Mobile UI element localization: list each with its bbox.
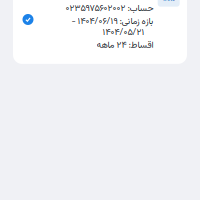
staticText: بازه زمانی: ۱۴۰۴/۰۶/۱۹ -: [71, 15, 153, 29]
staticText: ۱۴۰۴/۰۵/۲۱: [102, 26, 144, 40]
staticText: اقساط: ۲۴ ماهه: [96, 38, 153, 53]
staticText: تایید شده: [163, 0, 175, 5]
staticText: حساب: ۰۲۳۵۹۷۵۶۰۲۰۰۲: [65, 2, 153, 16]
button[interactable]: جزئیات تسهیلات: [0, 0, 200, 64]
